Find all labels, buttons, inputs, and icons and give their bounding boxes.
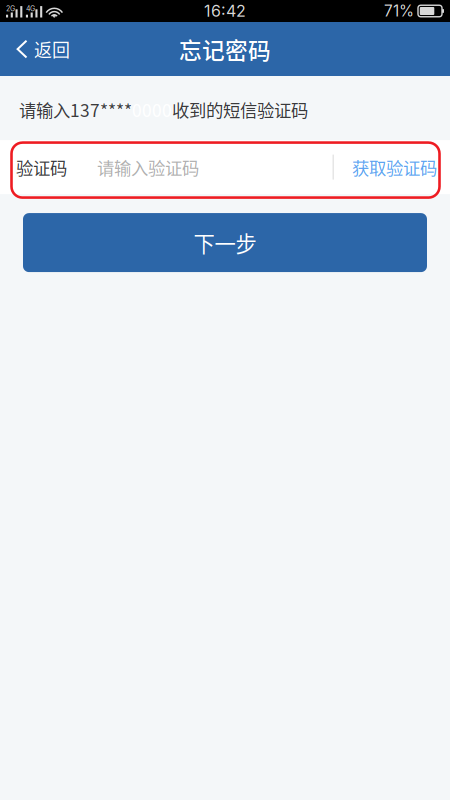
staticText: 4G [26, 4, 35, 13]
button[interactable]: 获取验证码 [334, 140, 450, 194]
button[interactable]: 返回 [0, 26, 82, 72]
staticText: 验证码 [16, 154, 67, 180]
staticText: 忘记密码 [179, 33, 271, 65]
staticText: 返回 [34, 36, 70, 62]
staticText: 请输入137**** [19, 97, 132, 122]
staticText: 0000 [132, 97, 172, 122]
staticText: 71% [384, 2, 414, 20]
staticText: 请输入验证码 [97, 154, 199, 180]
staticText: 2G [6, 4, 15, 13]
staticText: 下一步 [193, 227, 256, 258]
staticText: 获取验证码 [352, 154, 437, 180]
button[interactable]: 下一步 [23, 213, 427, 272]
staticText: 收到的短信验证码 [172, 97, 308, 122]
staticText: 16:42 [204, 1, 246, 21]
